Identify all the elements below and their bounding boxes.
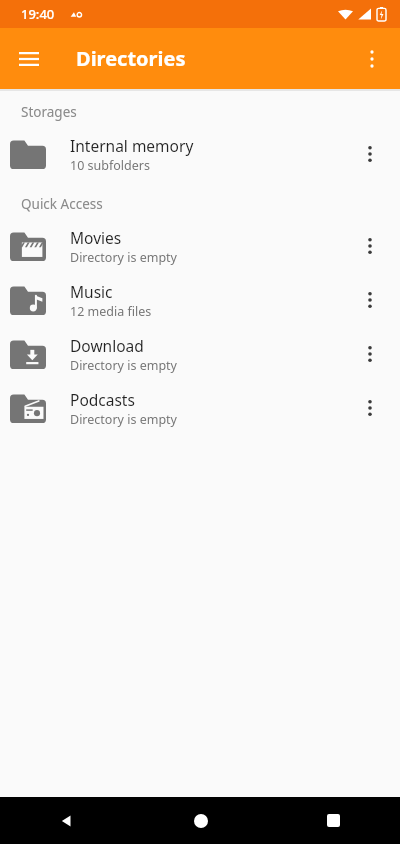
- staticText: Podcasts: [70, 389, 135, 410]
- button[interactable]: Download: [0, 327, 400, 381]
- button[interactable]: More options for Music: [348, 273, 392, 327]
- staticText: Directory is empty: [70, 411, 177, 428]
- button[interactable]: Recent apps: [267, 797, 400, 844]
- button[interactable]: Open navigation drawer: [9, 39, 49, 79]
- staticText: Movies: [70, 227, 122, 248]
- staticText: Directory is empty: [70, 249, 177, 266]
- button[interactable]: Internal memory: [0, 127, 400, 181]
- button[interactable]: Music: [0, 273, 400, 327]
- button[interactable]: More options for Podcasts: [348, 381, 392, 435]
- button[interactable]: Podcasts: [0, 381, 400, 435]
- staticText: Music: [70, 281, 113, 302]
- button[interactable]: Movies: [0, 219, 400, 273]
- button[interactable]: More options: [350, 37, 394, 81]
- button[interactable]: More options for Download: [348, 327, 392, 381]
- staticText: Quick Access: [21, 195, 103, 213]
- button[interactable]: Back: [0, 797, 134, 844]
- button[interactable]: More options for Movies: [348, 219, 392, 273]
- staticText: Directories: [76, 45, 186, 72]
- staticText: Internal memory: [70, 135, 194, 156]
- button[interactable]: More options for Internal memory: [348, 127, 392, 181]
- staticText: 12 media files: [70, 303, 152, 320]
- staticText: Download: [70, 335, 144, 356]
- staticText: Directory is empty: [70, 357, 177, 374]
- button[interactable]: Home: [134, 797, 267, 844]
- staticText: 19:40: [21, 5, 55, 23]
- staticText: Storages: [21, 103, 77, 121]
- staticText: 10 subfolders: [70, 157, 150, 174]
